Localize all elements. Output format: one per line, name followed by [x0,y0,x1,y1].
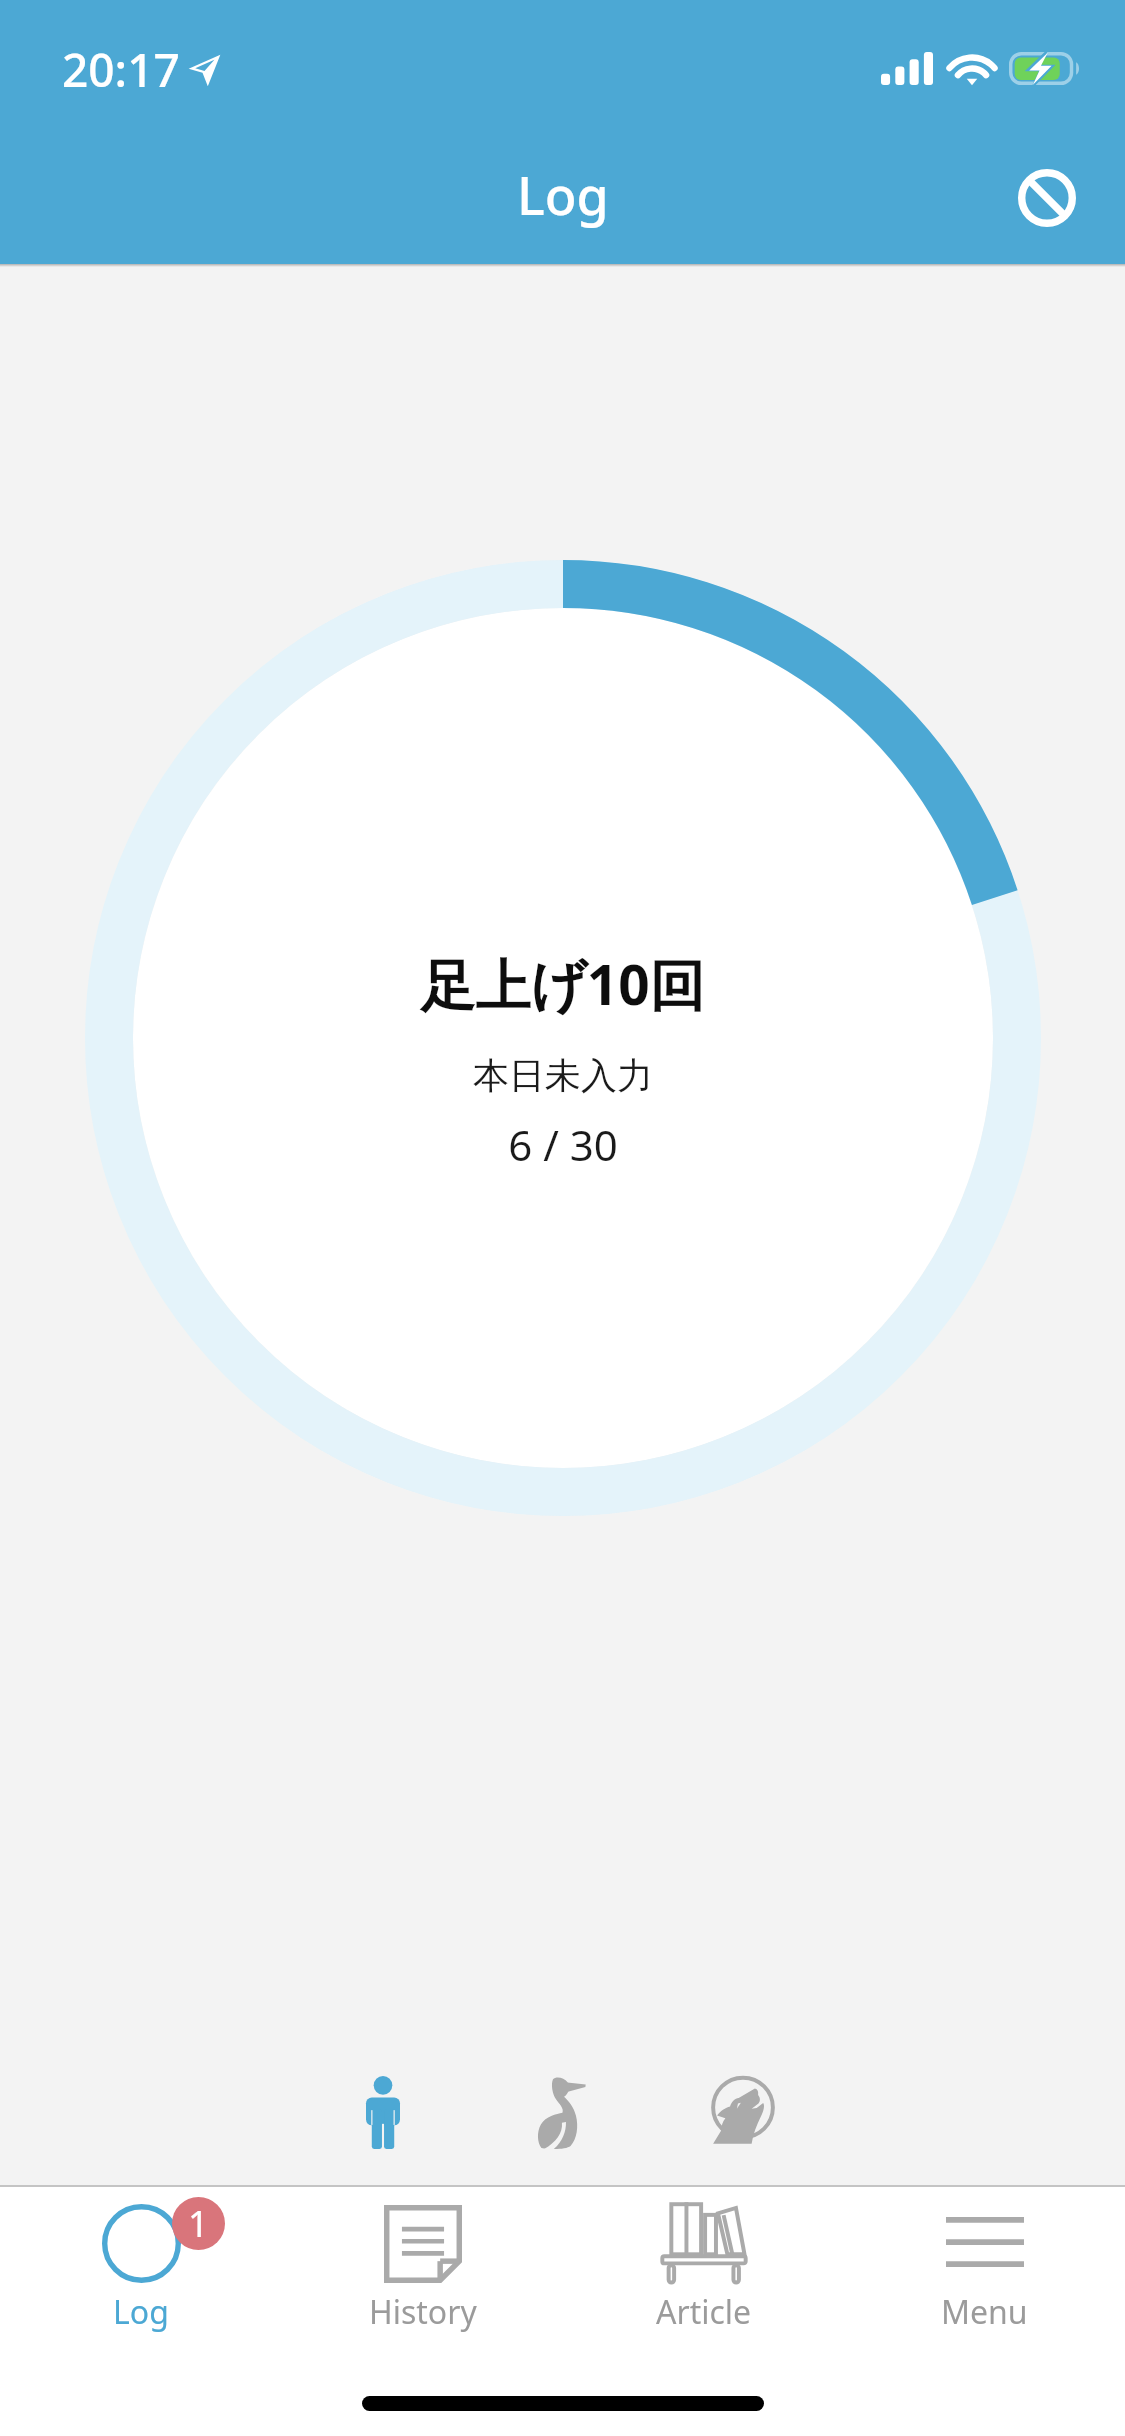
staticText: 1 [188,2199,209,2248]
button[interactable]: Block [997,148,1097,248]
button[interactable]: Wolf category [653,2058,833,2152]
button[interactable]: 1 [0,2187,282,2362]
staticText: Log [113,2290,169,2334]
staticText: 本日未入力 [473,1053,653,1098]
staticText: Menu [941,2290,1028,2334]
button[interactable]: 足上げ10回 progress 6 of 30 [85,560,1041,1516]
staticText: 20:17 [62,38,180,101]
staticText: History [369,2290,477,2334]
staticText: Log [517,159,609,230]
button[interactable]: Article [563,2187,844,2362]
button[interactable]: Person category [293,2058,473,2152]
button[interactable]: Bird category [473,2058,653,2152]
staticText: 足上げ10回 [420,946,705,1021]
staticText: 6 / 30 [508,1116,618,1173]
staticText: Article [656,2290,752,2334]
button[interactable]: History [282,2187,563,2362]
button[interactable]: Menu [844,2187,1125,2362]
